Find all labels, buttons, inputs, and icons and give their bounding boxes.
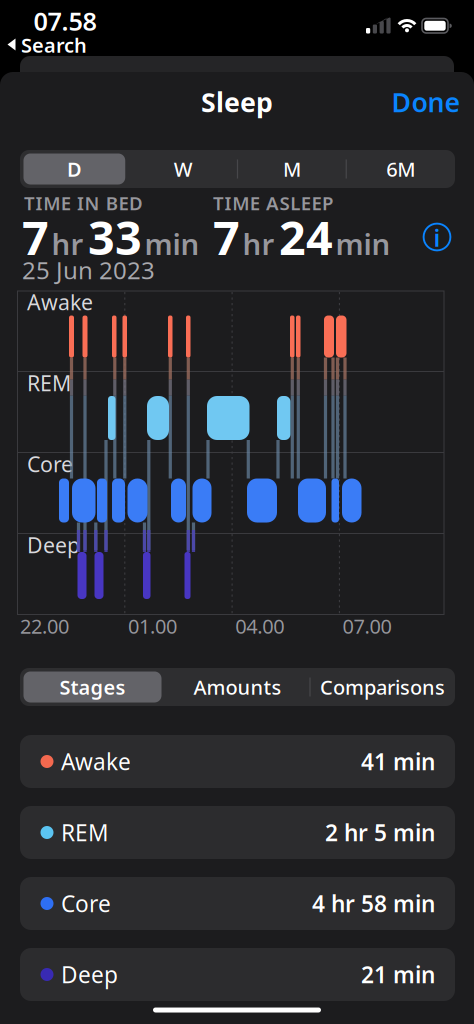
staticText: M xyxy=(283,156,301,182)
staticText: Deep xyxy=(27,531,80,559)
button[interactable]: Done xyxy=(388,85,464,119)
button[interactable]: Comparisons xyxy=(314,670,451,704)
button[interactable]: i xyxy=(422,222,452,252)
staticText: Awake xyxy=(61,746,131,776)
staticText: TIME ASLEEP xyxy=(213,191,333,215)
button[interactable]: Core xyxy=(20,877,455,930)
button[interactable]: Deep xyxy=(20,948,455,1001)
staticText: 21 min xyxy=(361,959,435,989)
button[interactable] xyxy=(23,671,161,702)
staticText: 22.00 xyxy=(20,613,69,639)
staticText: hr xyxy=(242,224,274,263)
staticText: 33 xyxy=(88,206,142,268)
staticText: TIME IN BED xyxy=(24,191,143,215)
button[interactable]: 6M xyxy=(350,152,451,186)
staticText: Done xyxy=(391,84,460,120)
staticText: REM xyxy=(61,817,109,847)
staticText: 7 xyxy=(213,206,240,268)
staticText: 7 xyxy=(22,206,49,268)
staticText: Core xyxy=(27,450,73,478)
staticText: 01.00 xyxy=(128,613,177,639)
button[interactable]: D xyxy=(24,152,125,186)
button[interactable]: W xyxy=(133,152,234,186)
staticText: REM xyxy=(27,369,71,397)
staticText: Sleep xyxy=(201,84,273,120)
staticText: 24 xyxy=(279,206,333,268)
staticText: 07.00 xyxy=(343,613,392,639)
staticText: Search xyxy=(21,32,87,58)
staticText: W xyxy=(174,156,193,182)
button[interactable]: Awake xyxy=(20,735,455,788)
staticText: hr xyxy=(51,224,83,263)
staticText: min xyxy=(335,224,390,263)
button[interactable]: Stages xyxy=(24,670,161,704)
button[interactable]: REM xyxy=(20,806,455,859)
staticText: Deep xyxy=(61,959,118,989)
button[interactable] xyxy=(23,153,125,184)
staticText: 25 Jun 2023 xyxy=(22,254,155,286)
staticText: Comparisons xyxy=(320,674,445,700)
staticText: Amounts xyxy=(193,674,281,700)
staticText: Stages xyxy=(59,674,125,700)
staticText: min xyxy=(144,224,199,263)
button[interactable]: Amounts xyxy=(169,670,306,704)
staticText: Core xyxy=(61,888,111,918)
staticText: 6M xyxy=(386,156,415,182)
staticText: i xyxy=(433,222,440,253)
staticText: 4 hr 58 min xyxy=(312,888,435,918)
staticText: 07.58 xyxy=(33,4,96,38)
staticText: Awake xyxy=(27,288,93,316)
staticText: 41 min xyxy=(361,746,435,776)
button[interactable]: Search xyxy=(5,34,89,56)
staticText: 04.00 xyxy=(235,613,284,639)
staticText: D xyxy=(67,156,82,182)
button[interactable]: M xyxy=(241,152,342,186)
staticText: 2 hr 5 min xyxy=(325,817,435,847)
